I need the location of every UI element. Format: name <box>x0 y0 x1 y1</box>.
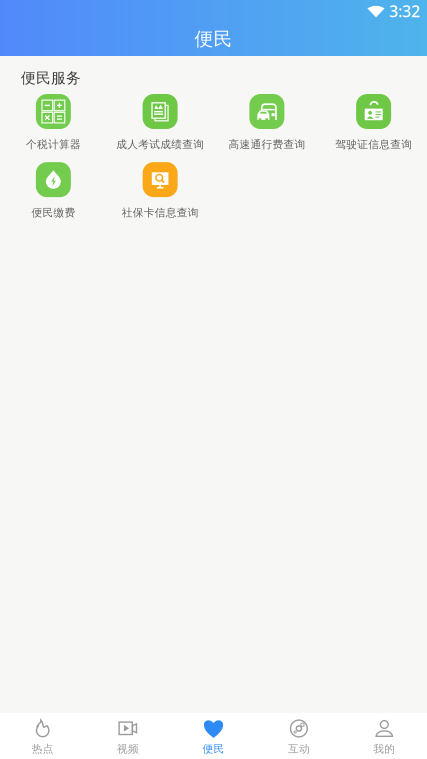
button[interactable]: 热点 <box>0 712 85 759</box>
staticText: 驾驶证信息查询 <box>335 138 412 151</box>
staticText: 我的 <box>373 742 395 756</box>
button[interactable]: 成人考试成绩查询 <box>107 90 214 158</box>
button[interactable]: 高速通行费查询 <box>213 90 320 158</box>
staticText: 个税计算器 <box>26 138 81 151</box>
button[interactable]: 互动 <box>256 712 342 759</box>
button[interactable]: 视频 <box>85 712 171 759</box>
staticText: 视频 <box>117 742 139 756</box>
staticText: 3:32 <box>389 0 420 22</box>
staticText: 互动 <box>288 742 310 756</box>
button[interactable]: 便民缴费 <box>0 158 107 226</box>
staticText: 成人考试成绩查询 <box>116 138 204 151</box>
staticText: 高速通行费查询 <box>228 138 305 151</box>
button[interactable]: 社保卡信息查询 <box>107 158 214 226</box>
staticText: 便民 <box>194 27 232 50</box>
staticText: 热点 <box>32 742 54 756</box>
staticText: 社保卡信息查询 <box>122 206 199 219</box>
staticText: 便民服务 <box>21 69 81 87</box>
staticText: 便民 <box>202 742 224 756</box>
staticText: 便民缴费 <box>31 206 75 219</box>
button[interactable]: 个税计算器 <box>0 90 107 158</box>
button[interactable]: 驾驶证信息查询 <box>320 90 427 158</box>
button[interactable]: 便民 <box>171 712 256 759</box>
button[interactable]: 我的 <box>342 712 427 759</box>
